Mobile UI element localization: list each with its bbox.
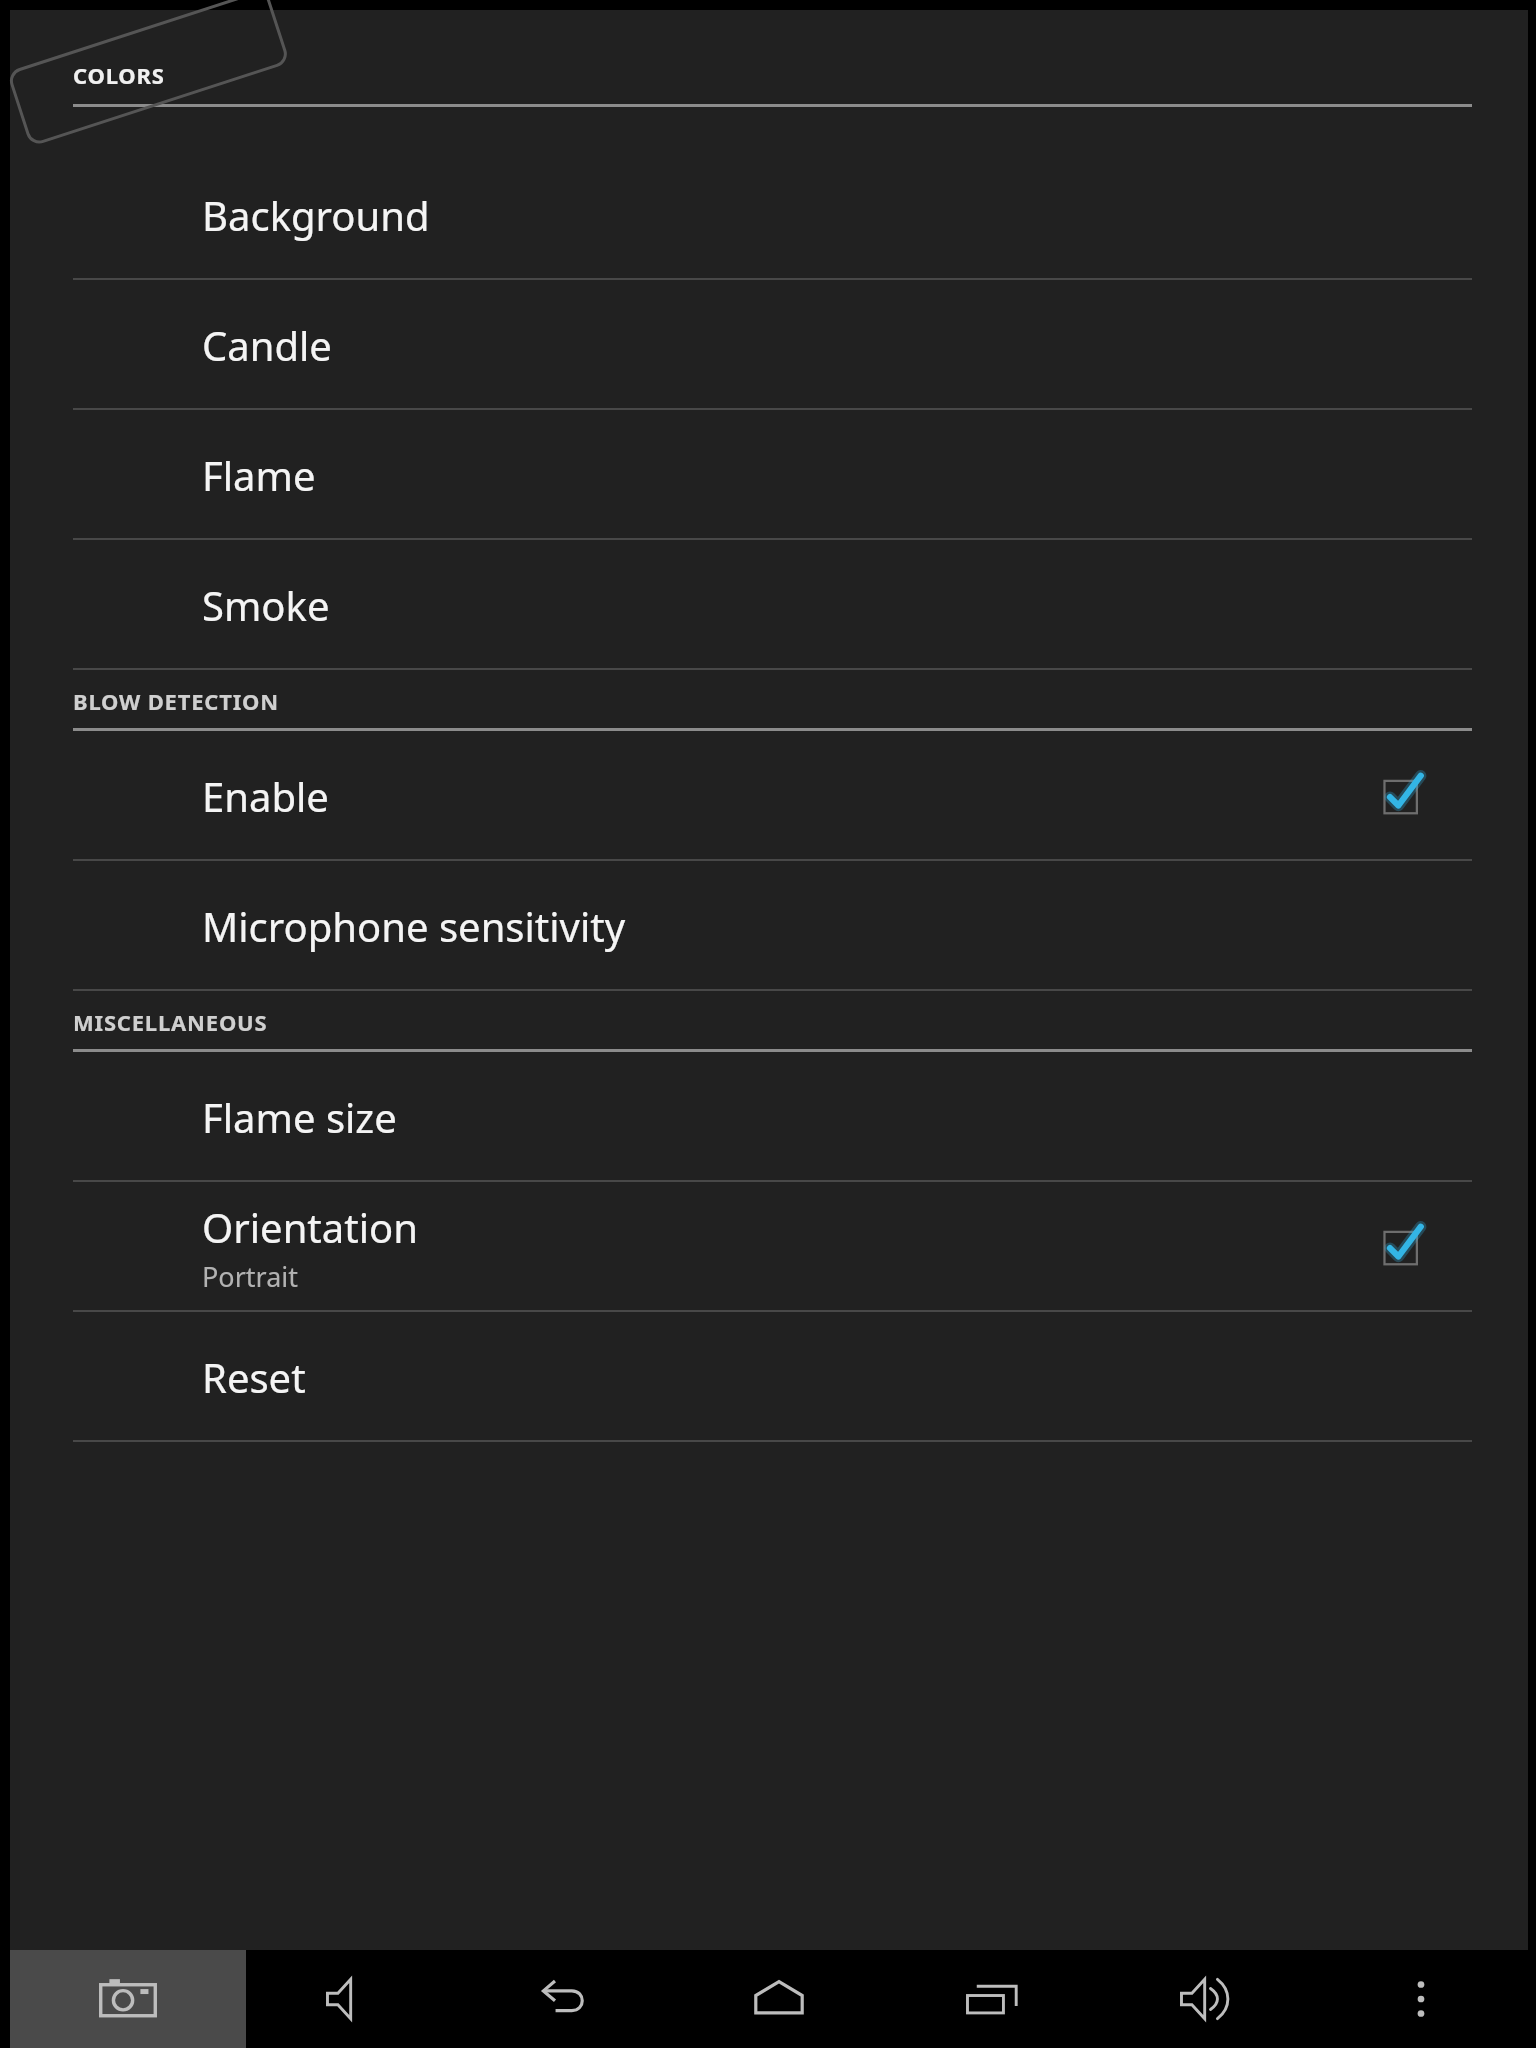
button[interactable]: Reset [10,1312,1528,1442]
staticText: Smoke [202,578,330,632]
button[interactable]: Screenshot [10,1950,246,2048]
staticText: Orientation [202,1200,418,1254]
staticText: Enable [202,769,329,823]
button[interactable]: Smoke [10,540,1528,670]
button[interactable]: More options [1314,1950,1528,2048]
button[interactable]: Flame [10,410,1528,540]
staticText: MISCELLANEOUS [73,1007,268,1037]
button[interactable]: Microphone sensitivity [10,861,1528,991]
staticText: Candle [202,318,332,372]
button[interactable]: Home [672,1950,886,2048]
button[interactable]: Background [10,150,1528,280]
button[interactable]: Candle [10,280,1528,410]
button[interactable]: Orientation [10,1182,1528,1312]
staticText: COLORS [73,60,165,90]
staticText: Flame size [202,1090,397,1144]
staticText: BLOW DETECTION [73,686,279,716]
button[interactable]: Volume up [1100,1950,1314,2048]
staticText: Reset [202,1350,306,1404]
button[interactable]: Enable [10,731,1528,861]
staticText: Flame [202,448,316,502]
staticText: Portrait [202,1258,299,1295]
button[interactable]: Recent apps [886,1950,1100,2048]
staticText: Microphone sensitivity [202,899,626,953]
button[interactable]: Volume down [246,1950,459,2048]
staticText: Background [202,188,430,242]
button[interactable]: Back [459,1950,672,2048]
button[interactable]: Flame size [10,1052,1528,1182]
